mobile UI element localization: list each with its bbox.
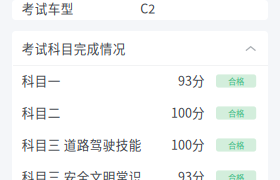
staticText: 科目三 道路驾驶技能 xyxy=(22,135,142,153)
button[interactable]: 科目一 xyxy=(12,66,268,98)
staticText: 合格 xyxy=(228,171,244,180)
button[interactable]: 考试车型 xyxy=(12,0,268,20)
staticText: 100分 xyxy=(171,103,205,121)
staticText: 科目一 xyxy=(22,71,61,89)
staticText: 合格 xyxy=(228,139,244,151)
staticText: 93分 xyxy=(178,71,205,89)
staticText: 100分 xyxy=(171,135,205,153)
button[interactable]: 考试科目完成情况 xyxy=(12,31,268,65)
button[interactable]: 科目三 道路驾驶技能 xyxy=(12,130,268,162)
staticText: C2 xyxy=(140,0,155,17)
button[interactable]: 科目二 xyxy=(12,98,268,130)
button[interactable]: 科目三 安全文明常识 xyxy=(12,162,268,180)
staticText: 合格 xyxy=(228,75,244,87)
staticText: 93分 xyxy=(178,167,205,180)
staticText: 科目三 安全文明常识 xyxy=(22,167,142,180)
staticText: 合格 xyxy=(228,107,244,119)
staticText: 科目二 xyxy=(22,103,61,121)
staticText: 考试车型 xyxy=(22,0,74,17)
staticText: 考试科目完成情况 xyxy=(22,39,126,57)
